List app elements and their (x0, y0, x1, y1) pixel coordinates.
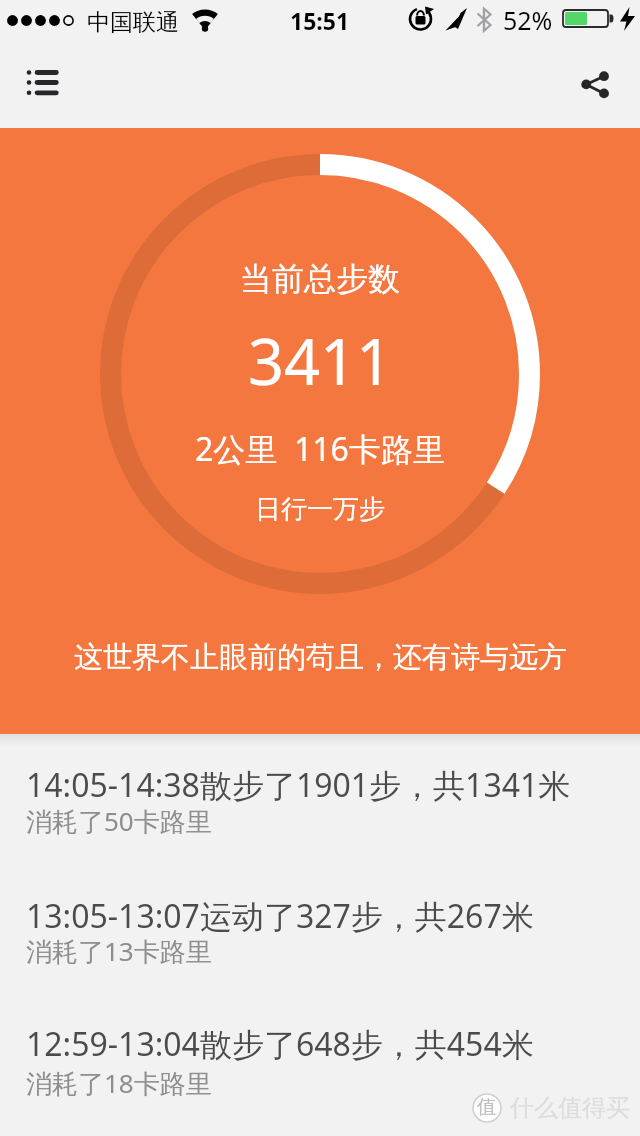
staticText: 2公里 116卡路里 (195, 427, 445, 471)
button[interactable]: 14:05-14:38散步了1901步，共1341米 (0, 763, 640, 840)
button[interactable]: 当前总步数 (0, 128, 640, 734)
staticText: 什么值得买 (510, 1093, 630, 1123)
button[interactable] (17, 64, 63, 104)
staticText: 13:05-13:07运动了327步，共267米 (26, 894, 534, 938)
staticText: 当前总步数 (240, 259, 400, 299)
button[interactable]: 12:59-13:04散步了648步，共454米 (0, 1022, 640, 1102)
button[interactable] (575, 64, 615, 104)
staticText: 值 (477, 1095, 496, 1119)
staticText: 消耗了50卡路里 (26, 803, 212, 839)
staticText: 14:05-14:38散步了1901步，共1341米 (26, 763, 571, 807)
staticText: 这世界不止眼前的苟且，还有诗与远方 (74, 639, 567, 676)
staticText: 3411 (248, 318, 393, 404)
staticText: 消耗了18卡路里 (26, 1065, 212, 1101)
staticText: 消耗了13卡路里 (26, 933, 212, 969)
staticText: 中国联通 (87, 8, 179, 37)
staticText: 日行一万步 (255, 493, 385, 526)
staticText: 12:59-13:04散步了648步，共454米 (26, 1022, 534, 1066)
staticText: 15:51 (290, 5, 350, 36)
staticText: 52% (503, 3, 553, 37)
button[interactable]: 13:05-13:07运动了327步，共267米 (0, 894, 640, 970)
